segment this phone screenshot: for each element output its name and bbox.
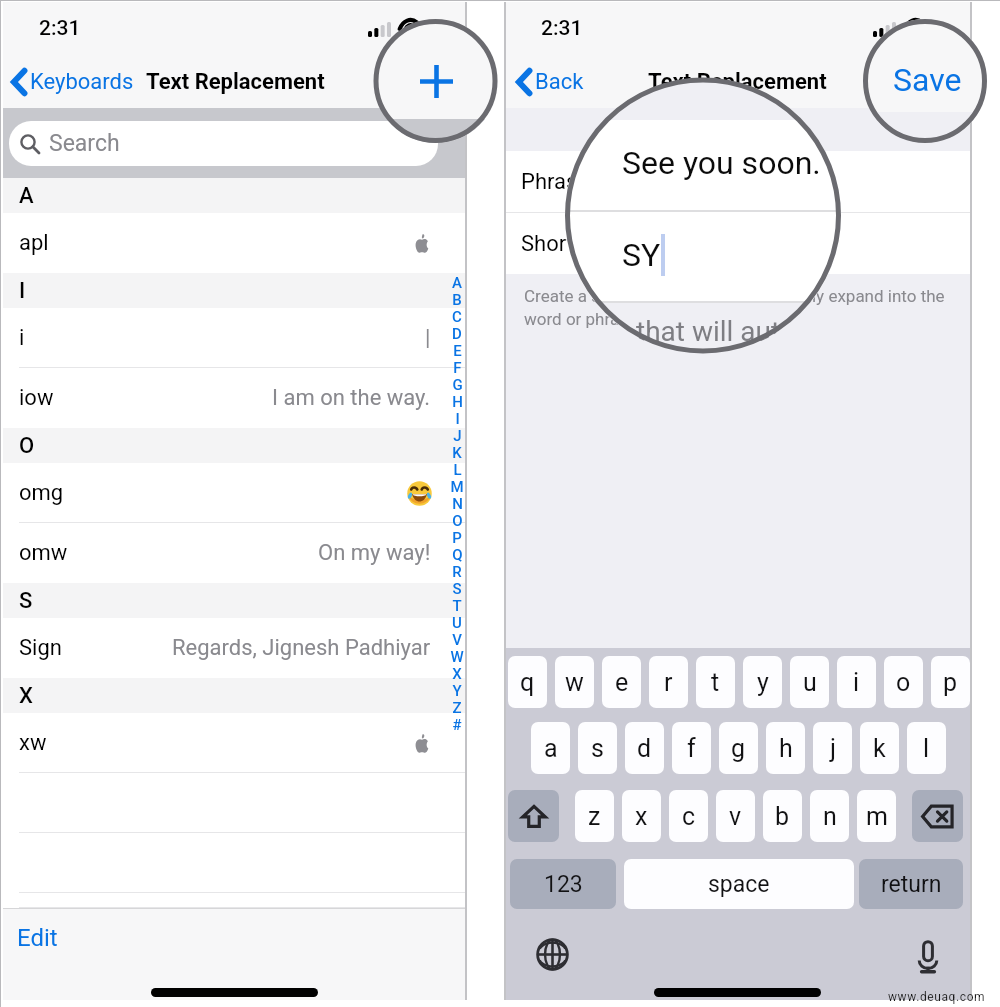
button[interactable]: Save xyxy=(893,61,962,99)
button[interactable]: Save xyxy=(896,68,948,96)
staticText: I am on the way. xyxy=(272,385,431,411)
staticText: Phrase xyxy=(521,169,590,195)
button[interactable]: u xyxy=(790,656,829,708)
button[interactable]: f xyxy=(672,722,711,774)
button[interactable]: omw xyxy=(3,523,465,583)
button[interactable]: xw xyxy=(3,713,465,773)
button[interactable]: d xyxy=(625,722,664,774)
button[interactable]: i xyxy=(837,656,876,708)
staticText: i xyxy=(19,325,25,351)
button[interactable]: 123 xyxy=(510,859,616,909)
staticText: N xyxy=(452,495,463,512)
staticText: Y xyxy=(452,682,462,699)
staticText: 123 xyxy=(544,871,583,898)
staticText: J xyxy=(453,427,462,444)
button[interactable]: o xyxy=(884,656,923,708)
staticText: r xyxy=(664,668,673,697)
staticText: 2:31 xyxy=(541,16,583,41)
button[interactable]: j xyxy=(813,722,852,774)
button[interactable]: t xyxy=(696,656,735,708)
staticText: p xyxy=(943,668,958,697)
button[interactable]: Dictate xyxy=(910,939,946,975)
staticText: P xyxy=(452,529,462,546)
button[interactable]: m xyxy=(857,790,896,842)
staticText: Shortcut xyxy=(521,231,605,257)
button[interactable]: Shift xyxy=(508,790,559,842)
staticText: 2:31 xyxy=(39,16,81,41)
staticText: Text Replacement xyxy=(648,69,827,95)
button[interactable]: r xyxy=(649,656,688,708)
staticText: b xyxy=(775,802,790,831)
staticText: Create a shortcut that will automaticall… xyxy=(524,286,958,329)
staticText: C xyxy=(452,308,462,325)
button[interactable]: space xyxy=(624,859,854,909)
staticText: V xyxy=(452,631,462,648)
staticText: L xyxy=(453,461,462,478)
button[interactable]: a xyxy=(531,722,570,774)
staticText: D xyxy=(452,325,462,342)
staticText: A xyxy=(19,183,34,209)
button[interactable]: w xyxy=(555,656,594,708)
button[interactable]: n xyxy=(810,790,849,842)
button[interactable]: Edit xyxy=(17,924,58,952)
staticText: R xyxy=(452,563,462,580)
staticText: o xyxy=(896,668,911,697)
button[interactable]: i xyxy=(3,308,465,368)
button[interactable]: Phrase xyxy=(505,151,970,212)
staticText: v xyxy=(729,802,742,831)
button[interactable]: s xyxy=(578,722,617,774)
staticText: k xyxy=(873,734,886,763)
staticText: I xyxy=(19,278,26,304)
button[interactable]: h xyxy=(766,722,805,774)
button[interactable]: z xyxy=(575,790,614,842)
button[interactable]: e xyxy=(602,656,641,708)
button[interactable]: Back xyxy=(516,68,584,96)
button[interactable]: Backspace xyxy=(912,790,963,842)
staticText: # xyxy=(452,716,462,733)
staticText: B xyxy=(452,291,462,308)
button[interactable]: Change keyboard xyxy=(534,936,570,972)
button[interactable]: b xyxy=(763,790,802,842)
button[interactable]: Add text replacement xyxy=(416,61,456,101)
staticText: omg xyxy=(19,480,64,506)
staticText: S xyxy=(452,580,462,597)
staticText: T xyxy=(452,597,462,614)
staticText: t xyxy=(711,668,720,697)
button[interactable]: p xyxy=(931,656,970,708)
staticText: y xyxy=(757,668,769,697)
staticText: d xyxy=(637,734,652,763)
staticText: On my way! xyxy=(318,540,431,566)
button[interactable]: k xyxy=(860,722,899,774)
button[interactable]: g xyxy=(719,722,758,774)
button[interactable]: Shortcut xyxy=(505,213,970,274)
button[interactable]: c xyxy=(669,790,708,842)
button[interactable]: omg xyxy=(3,463,465,523)
staticText: space xyxy=(708,871,770,898)
button[interactable]: iow xyxy=(3,368,465,428)
staticText: z xyxy=(588,802,601,831)
staticText: that will aut xyxy=(636,315,781,348)
staticText: e xyxy=(615,668,629,697)
staticText: F xyxy=(453,359,462,376)
button[interactable]: Sign xyxy=(3,618,465,678)
staticText: omw xyxy=(19,540,68,566)
button[interactable]: v xyxy=(716,790,755,842)
button[interactable]: q xyxy=(508,656,547,708)
staticText: SY xyxy=(622,236,661,274)
staticText: Sign xyxy=(19,635,62,661)
button[interactable]: x xyxy=(622,790,661,842)
staticText: c xyxy=(682,802,696,831)
staticText: S xyxy=(19,588,33,614)
button[interactable]: return xyxy=(859,859,963,909)
button[interactable]: apl xyxy=(3,213,465,273)
staticText: xw xyxy=(19,730,47,756)
staticText: Q xyxy=(452,546,463,563)
staticText: | xyxy=(425,325,431,351)
staticText: Back xyxy=(535,69,584,95)
button[interactable]: Search xyxy=(9,121,438,166)
button[interactable]: l xyxy=(907,722,946,774)
staticText: f xyxy=(687,734,696,763)
button[interactable]: y xyxy=(743,656,782,708)
staticText: h xyxy=(779,734,793,763)
button[interactable]: Keyboards xyxy=(11,68,134,96)
